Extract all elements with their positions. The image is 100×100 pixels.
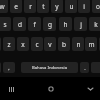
staticText: y	[55, 2, 59, 11]
staticText: .	[84, 64, 86, 71]
staticText: m	[88, 40, 95, 49]
button[interactable]: s	[0, 17, 11, 31]
staticText: b	[62, 40, 66, 49]
button[interactable]: Recent apps	[3, 82, 20, 96]
button[interactable]: ,	[3, 62, 15, 73]
button[interactable]: b	[58, 37, 70, 51]
button[interactable]: Bahasa Indonesia	[21, 62, 78, 73]
button[interactable]: j	[74, 17, 87, 31]
button[interactable]: .	[80, 62, 89, 73]
staticText: i	[83, 2, 85, 11]
button[interactable]: y	[51, 0, 63, 13]
staticText: h	[63, 20, 68, 29]
staticText: k	[94, 20, 98, 29]
button[interactable]: c	[31, 37, 43, 51]
button[interactable]: e	[10, 0, 22, 13]
button[interactable]: o	[92, 0, 100, 13]
staticText: w	[0, 2, 5, 11]
button[interactable]: v	[44, 37, 56, 51]
button[interactable]: m	[85, 37, 97, 51]
button[interactable]: n	[72, 37, 84, 51]
button[interactable]: i	[78, 0, 90, 13]
button[interactable]: g	[43, 17, 56, 31]
button[interactable]: z	[3, 37, 15, 51]
staticText: t	[42, 2, 45, 11]
staticText: j	[80, 20, 82, 29]
button[interactable]: t	[37, 0, 49, 13]
button[interactable]: x	[17, 37, 29, 51]
button[interactable]: Shift	[0, 37, 1, 51]
button[interactable]: f	[28, 17, 41, 31]
button[interactable]: u	[65, 0, 77, 13]
button[interactable]: ?123	[0, 62, 1, 73]
staticText: e	[14, 2, 18, 11]
staticText: c	[35, 40, 39, 49]
staticText: u	[69, 2, 74, 11]
staticText: z	[7, 40, 11, 49]
button[interactable]: d	[13, 17, 26, 31]
staticText: g	[48, 20, 52, 29]
staticText: v	[48, 40, 52, 49]
staticText: Bahasa Indonesia	[32, 65, 67, 71]
staticText: x	[21, 40, 25, 49]
button[interactable]: r	[24, 0, 36, 13]
button[interactable]: h	[59, 17, 72, 31]
button[interactable]: k	[89, 17, 100, 31]
staticText: f	[33, 20, 36, 29]
button[interactable]: Backspace	[99, 37, 100, 51]
staticText: n	[76, 40, 81, 49]
button[interactable]: w	[0, 0, 8, 13]
staticText: s	[3, 20, 7, 29]
button[interactable]: Home	[42, 82, 59, 96]
staticText: o	[96, 2, 100, 11]
staticText: d	[18, 20, 22, 29]
staticText: ,	[8, 64, 10, 71]
staticText: r	[29, 2, 32, 11]
button[interactable]: Hide keyboard	[82, 82, 99, 96]
